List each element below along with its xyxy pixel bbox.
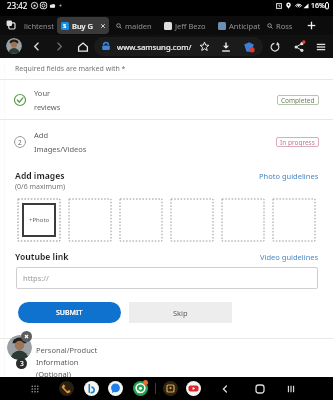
button[interactable]: Forward	[51, 38, 68, 55]
button[interactable]: SUBMIT	[18, 302, 121, 323]
button[interactable]: Photo guidelines	[259, 171, 319, 181]
button[interactable]: Add photo	[273, 199, 315, 241]
button[interactable]: Your	[0, 80, 333, 119]
staticText: Jeff Bezo	[175, 21, 206, 31]
button[interactable]: +Photo	[22, 203, 56, 237]
button[interactable]: Bookmark	[196, 38, 213, 55]
button[interactable]: Phone	[59, 381, 74, 396]
button[interactable]: Gallery	[163, 381, 178, 396]
button[interactable]: Protection	[240, 38, 257, 55]
button[interactable]: Jeff Bezo	[160, 17, 210, 34]
staticText: maiden d	[125, 21, 157, 31]
staticText: lichtenste	[24, 21, 54, 31]
staticText: +Photo	[29, 216, 50, 224]
button[interactable]: Home	[250, 379, 270, 399]
button[interactable]: Tabs	[3, 17, 19, 33]
button[interactable]: Profile	[6, 38, 22, 54]
button[interactable]: Recents	[281, 379, 301, 399]
staticText: reviews	[34, 102, 61, 112]
staticText: Add images	[15, 170, 65, 182]
staticText: SUBMIT	[56, 308, 83, 318]
button[interactable]: Anticipati	[214, 17, 264, 34]
button[interactable]: 2	[0, 120, 333, 164]
button[interactable]: Add photo	[171, 199, 213, 241]
button[interactable]: maiden d	[112, 17, 160, 34]
staticText: 3	[20, 359, 24, 368]
staticText: 16%	[311, 1, 325, 11]
staticText: Buy G	[72, 21, 93, 31]
button[interactable]: lichtenste	[17, 17, 57, 34]
button[interactable]: Messenger	[108, 381, 123, 396]
button[interactable]: New tab	[303, 17, 319, 33]
staticText: 23:42	[7, 0, 28, 11]
button[interactable]: Add photo	[222, 199, 264, 241]
staticText: Ross	[276, 21, 293, 31]
button[interactable]: Back	[215, 379, 235, 399]
button[interactable]: S	[57, 17, 109, 34]
staticText: (Optional)	[36, 369, 71, 379]
button[interactable]: https://	[16, 267, 318, 289]
button[interactable]: Add photo	[120, 199, 162, 241]
button[interactable]: Assistant	[7, 335, 32, 360]
staticText: Required fields are marked with *	[15, 64, 126, 74]
staticText: Youtube link	[15, 251, 69, 263]
staticText: 2	[18, 138, 22, 147]
staticText: Personal/Product	[36, 345, 98, 355]
staticText: Completed	[281, 96, 315, 105]
button[interactable]: Share	[290, 38, 307, 55]
staticText: Images/Videos	[34, 144, 87, 154]
button[interactable]: Ross	[263, 17, 303, 34]
staticText: Your	[34, 88, 51, 98]
button[interactable]: Menu	[312, 38, 329, 55]
button[interactable]: Back	[28, 38, 45, 55]
button[interactable]: Video guidelines	[260, 252, 319, 262]
button[interactable]: YouTube	[186, 381, 201, 396]
button[interactable]: Reload	[266, 38, 283, 55]
staticText: Add	[34, 130, 49, 140]
staticText: https://	[23, 273, 49, 283]
button[interactable]: Apps	[27, 381, 42, 396]
button[interactable]: Bing	[84, 381, 99, 396]
button[interactable]: Skip	[129, 302, 232, 323]
staticText: In progress	[280, 138, 315, 147]
button[interactable]: WhatsApp	[133, 381, 148, 396]
staticText: S	[63, 22, 67, 30]
button[interactable]: Add photo	[69, 199, 111, 241]
staticText: Information	[36, 357, 79, 367]
staticText: Anticipati	[229, 21, 261, 31]
button[interactable]: Home	[74, 38, 91, 55]
button[interactable]: Downloads	[217, 38, 234, 55]
staticText: (0/6 maximum)	[15, 182, 66, 192]
staticText: www.samsung.com/u	[117, 42, 193, 53]
button[interactable]: Close	[21, 331, 32, 342]
staticText: Skip	[173, 308, 188, 318]
button[interactable]	[94, 37, 263, 56]
